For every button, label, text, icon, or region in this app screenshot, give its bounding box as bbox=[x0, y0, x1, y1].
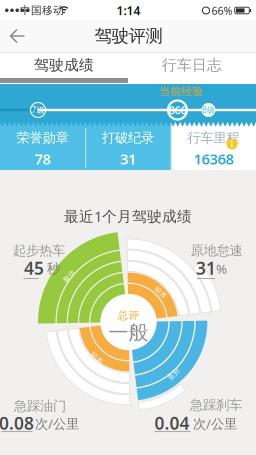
staticText: 866 bbox=[168, 103, 186, 117]
staticText: 行车里程 bbox=[187, 130, 239, 146]
staticText: 当前经验 bbox=[159, 85, 203, 98]
staticText: 打破纪录 bbox=[102, 130, 154, 146]
staticText: 起步热车 bbox=[13, 242, 65, 259]
staticText: % bbox=[216, 260, 227, 277]
staticText: 较差 bbox=[90, 354, 104, 362]
staticText: i bbox=[230, 138, 233, 150]
staticText: 秒 bbox=[47, 260, 60, 277]
staticText: 31 bbox=[120, 149, 136, 168]
staticText: 驾驶评测 bbox=[94, 25, 162, 47]
staticText: 31 bbox=[196, 256, 216, 279]
staticText: 次/公里 bbox=[193, 415, 237, 432]
staticText: 总评 bbox=[117, 309, 139, 322]
staticText: 78 bbox=[34, 149, 50, 168]
button[interactable]: 行车日志 bbox=[128, 52, 256, 78]
staticText: 7级 bbox=[31, 105, 44, 115]
staticText: 良好 bbox=[167, 370, 181, 378]
staticText: 0.08 bbox=[0, 411, 34, 434]
staticText: 急踩刹车 bbox=[190, 397, 242, 413]
button[interactable]: 驾驶成绩 bbox=[0, 52, 128, 78]
staticText: 1:14 bbox=[116, 2, 140, 18]
staticText: 45 bbox=[24, 256, 44, 279]
staticText: 66% bbox=[211, 3, 232, 18]
staticText: 原地怠速 bbox=[190, 242, 242, 259]
staticText: 行车日志 bbox=[162, 56, 222, 74]
staticText: 急踩油门 bbox=[14, 398, 66, 414]
staticText: 较差 bbox=[154, 288, 168, 297]
button[interactable]: 打破纪录 bbox=[86, 128, 170, 170]
button[interactable]: Back bbox=[8, 28, 26, 44]
staticText: 次/公里 bbox=[35, 415, 79, 432]
staticText: 最近1个月驾驶成绩 bbox=[64, 206, 192, 226]
staticText: 中国移动 bbox=[20, 4, 64, 17]
button[interactable]: 行车里程 bbox=[171, 128, 255, 170]
staticText: 16368 bbox=[193, 149, 233, 168]
staticText: 一般 bbox=[108, 320, 148, 345]
staticText: 极佳 bbox=[62, 272, 76, 280]
staticText: 荣誉勋章 bbox=[16, 130, 68, 146]
staticText: 0.04 bbox=[154, 411, 189, 434]
button[interactable]: 荣誉勋章 bbox=[0, 128, 84, 170]
staticText: 8级 bbox=[202, 105, 215, 115]
staticText: 驾驶成绩 bbox=[34, 56, 94, 74]
